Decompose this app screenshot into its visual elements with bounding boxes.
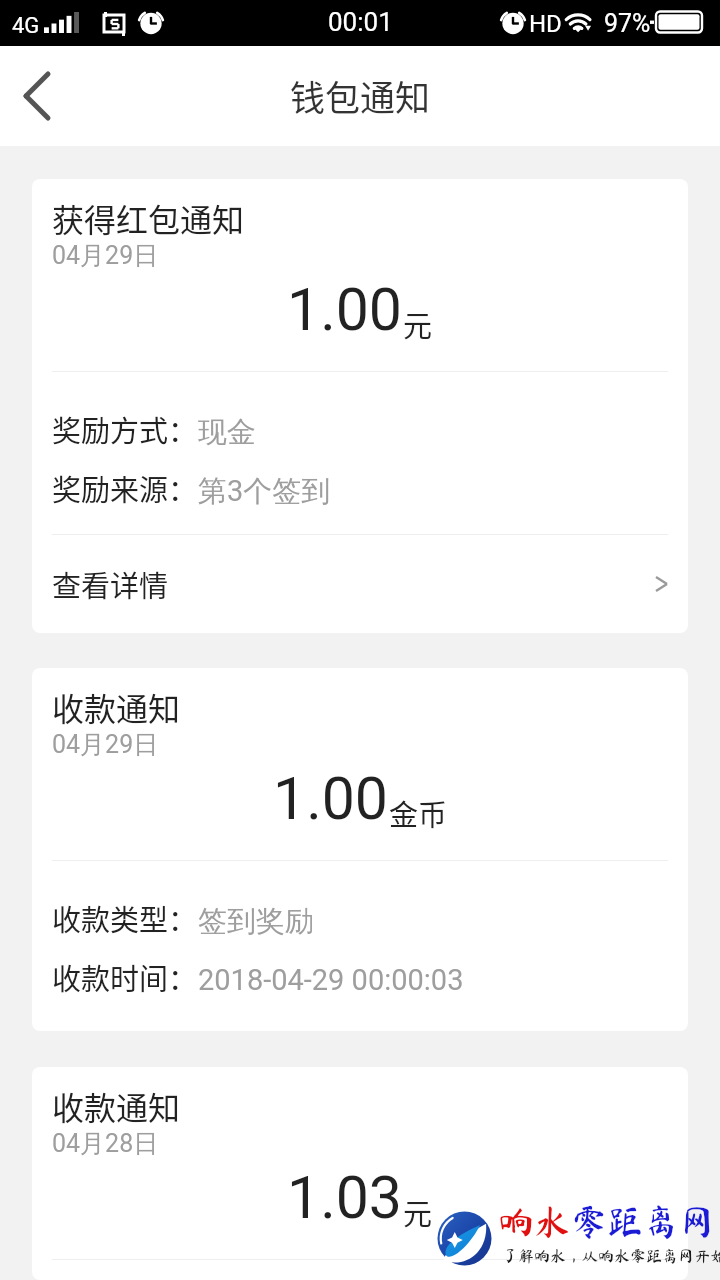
button[interactable]: 获得红包通知 [32,179,688,633]
staticText: 第3个签到 [198,473,331,510]
staticText: 奖励方式： [52,408,198,450]
staticText: HD [529,10,562,38]
staticText: 查看详情 [52,563,169,605]
staticText: 04月29日 [52,729,159,760]
staticText: 收款类型： [52,897,198,939]
staticText: 元 [403,1191,433,1233]
staticText: 零距离网 [571,1203,716,1239]
button[interactable]: 收款通知 [32,1067,688,1280]
button[interactable]: Back [0,46,74,146]
staticText: 收款通知 [52,684,181,730]
button[interactable]: 收款通知 [32,668,688,1031]
staticText: 元 [403,303,433,345]
staticText: 收款通知 [52,1083,181,1129]
staticText: 钱包通知 [290,70,431,121]
staticText: 现金 [198,414,256,451]
staticText: 1.00 [287,275,403,344]
staticText: 00:01 [328,7,393,37]
staticText: 2018-04-29 00:00:03 [198,963,464,997]
staticText: 金币 [389,792,448,834]
staticText: 4G [12,13,40,39]
button[interactable]: 查看详情 [32,535,688,633]
staticText: 04月28日 [52,1128,159,1159]
staticText: 签到奖励 [198,903,314,940]
staticText: 收款时间： [52,956,198,998]
staticText: 了解响水，从响水零距离网开始 [502,1248,720,1264]
staticText: 获得红包通知 [52,195,245,241]
staticText: 1.00 [273,764,389,833]
staticText: 响水 [498,1203,571,1239]
staticText: 97% [604,9,651,38]
staticText: 奖励来源： [52,467,198,509]
staticText: 04月29日 [52,240,159,271]
staticText: 1.03 [287,1163,403,1232]
